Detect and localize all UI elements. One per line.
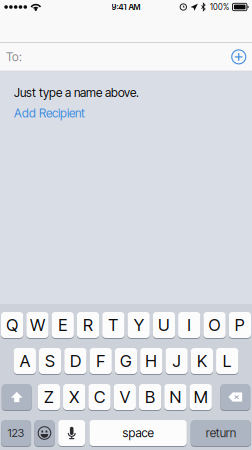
staticText: W <box>30 315 45 335</box>
button[interactable]: Delete <box>220 384 250 411</box>
staticText: To: <box>6 50 22 64</box>
button[interactable]: O <box>203 312 226 339</box>
staticText: U <box>158 315 170 335</box>
staticText: Just type a name above. <box>14 85 139 100</box>
button[interactable]: M <box>190 384 212 411</box>
button[interactable]: 123 <box>1 420 31 447</box>
staticText: O <box>209 315 221 335</box>
staticText: Add Recipient <box>14 106 85 120</box>
button[interactable]: A <box>14 348 36 375</box>
staticText: F <box>96 351 105 371</box>
staticText: C <box>94 387 105 407</box>
button[interactable]: H <box>140 348 162 375</box>
button[interactable]: F <box>89 348 112 375</box>
button[interactable]: Dictate <box>58 420 85 447</box>
staticText: V <box>120 387 130 407</box>
button[interactable]: D <box>64 348 86 375</box>
button[interactable]: S <box>39 348 61 375</box>
button[interactable]: Z <box>38 384 60 411</box>
button[interactable]: Add Recipient <box>14 106 85 120</box>
button[interactable]: E <box>52 312 74 339</box>
button[interactable]: L <box>216 348 238 375</box>
staticText: Q <box>6 315 18 335</box>
button[interactable]: Add contact <box>225 43 252 71</box>
staticText: S <box>45 351 55 371</box>
staticText: M <box>194 387 208 407</box>
button[interactable]: Q <box>1 312 23 339</box>
staticText: 123 <box>8 426 25 440</box>
button[interactable]: Y <box>127 312 150 339</box>
staticText: L <box>223 351 232 371</box>
staticText: Z <box>44 387 54 407</box>
button[interactable]: G <box>115 348 137 375</box>
staticText: A <box>20 351 30 371</box>
button[interactable]: V <box>114 384 136 411</box>
staticText: E <box>58 315 67 335</box>
staticText: B <box>145 387 155 407</box>
staticText: 9:41 AM <box>111 2 140 12</box>
button[interactable]: X <box>63 384 85 411</box>
button[interactable]: R <box>77 312 99 339</box>
staticText: G <box>120 351 132 371</box>
button[interactable]: B <box>139 384 161 411</box>
button[interactable]: I <box>178 312 200 339</box>
button[interactable]: space <box>89 420 187 447</box>
staticText: I <box>187 315 191 335</box>
staticText: D <box>70 351 81 371</box>
staticText: T <box>108 315 118 335</box>
button[interactable]: C <box>88 384 111 411</box>
staticText: R <box>83 315 93 335</box>
button[interactable]: N <box>164 384 186 411</box>
staticText: 100% <box>210 2 229 12</box>
button[interactable]: return <box>191 420 251 447</box>
staticText: N <box>169 387 181 407</box>
staticText: Y <box>134 315 144 335</box>
button[interactable]: Emoji <box>34 420 55 447</box>
button[interactable]: Shift <box>2 384 32 411</box>
staticText: space <box>123 426 154 440</box>
button[interactable]: U <box>153 312 175 339</box>
staticText: H <box>145 351 157 371</box>
staticText: X <box>69 387 79 407</box>
button[interactable]: J <box>165 348 188 375</box>
button[interactable]: T <box>102 312 124 339</box>
staticText: J <box>173 351 181 371</box>
staticText: return <box>206 426 236 440</box>
staticText: K <box>197 351 207 371</box>
staticText: P <box>235 315 245 335</box>
button[interactable]: W <box>26 312 49 339</box>
button[interactable]: P <box>229 312 251 339</box>
button[interactable]: K <box>191 348 213 375</box>
